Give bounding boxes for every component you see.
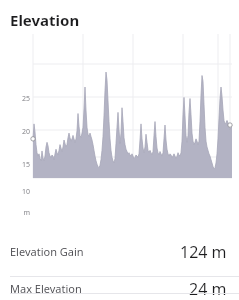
staticText: 10	[0, 187, 30, 197]
staticText: 25	[0, 94, 30, 104]
staticText: 15	[0, 160, 30, 170]
staticText: Elevation Gain	[10, 244, 84, 259]
other: Elevation profile chart	[0, 34, 239, 215]
staticText: 20	[0, 127, 30, 137]
staticText: m	[0, 208, 30, 215]
staticText: Max Elevation	[10, 281, 82, 296]
button[interactable]: Max Elevation	[0, 277, 239, 300]
staticText: Elevation	[10, 10, 80, 30]
staticText: 24 m	[189, 278, 227, 300]
staticText: 124 m	[180, 241, 227, 263]
button[interactable]: Elevation Gain	[0, 227, 239, 276]
